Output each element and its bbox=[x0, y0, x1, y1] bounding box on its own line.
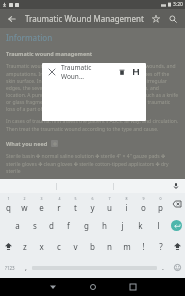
staticText: m bbox=[123, 241, 131, 252]
staticText: v bbox=[73, 241, 78, 252]
staticText: 5 bbox=[74, 196, 77, 201]
button[interactable]: . bbox=[157, 257, 169, 278]
staticText: i bbox=[125, 202, 128, 213]
button[interactable]: 0 bbox=[152, 193, 169, 215]
button[interactable]: ! bbox=[135, 236, 152, 257]
button[interactable]: Expand bbox=[51, 140, 58, 147]
button[interactable]: 8 bbox=[118, 193, 135, 215]
staticText: p bbox=[158, 202, 163, 213]
staticText: Traumatic Woun... bbox=[61, 63, 116, 81]
staticText: What you need bbox=[6, 140, 48, 147]
staticText: t bbox=[74, 202, 77, 213]
staticText: c bbox=[57, 241, 61, 252]
button[interactable]: Space bbox=[32, 262, 157, 273]
button[interactable]: l bbox=[149, 215, 167, 236]
staticText: 2 bbox=[23, 196, 26, 201]
button[interactable]: Save bbox=[130, 66, 142, 78]
button[interactable]: Close bbox=[46, 66, 58, 78]
staticText: s bbox=[33, 220, 37, 231]
button[interactable]: v bbox=[67, 236, 84, 257]
staticText: In cases of trauma, first assess the pat… bbox=[6, 118, 179, 132]
staticText: l bbox=[157, 220, 160, 231]
button[interactable]: Voice input bbox=[170, 180, 182, 192]
button[interactable]: 7 bbox=[101, 193, 118, 215]
staticText: f bbox=[67, 220, 70, 231]
button[interactable]: Emoji bbox=[169, 257, 185, 278]
button[interactable]: ?123 bbox=[0, 257, 20, 278]
staticText: a bbox=[15, 220, 20, 231]
staticText: o bbox=[141, 202, 146, 213]
button[interactable]: Shift bbox=[169, 236, 185, 257]
staticText: Traumatic Wound Management bbox=[25, 13, 149, 24]
staticText: ! bbox=[142, 241, 145, 252]
button[interactable]: j bbox=[113, 215, 131, 236]
staticText: 7 bbox=[108, 196, 111, 201]
staticText: b bbox=[90, 241, 95, 252]
button[interactable]: k bbox=[131, 215, 149, 236]
staticText: 4 bbox=[58, 196, 61, 201]
staticText: Information bbox=[6, 32, 53, 43]
staticText: , bbox=[25, 263, 27, 273]
button[interactable]: 1 bbox=[0, 193, 16, 215]
staticText: j bbox=[121, 220, 124, 231]
staticText: Sterile basin ✤ normal saline solution ✤… bbox=[6, 153, 179, 174]
staticText: h bbox=[102, 220, 107, 231]
staticText: . bbox=[162, 263, 164, 273]
staticText: 1 bbox=[7, 196, 10, 201]
staticText: 8 bbox=[125, 196, 128, 201]
button[interactable]: 2 bbox=[16, 193, 33, 215]
button[interactable]: ? bbox=[152, 236, 169, 257]
button[interactable]: b bbox=[84, 236, 101, 257]
button[interactable]: Enter bbox=[167, 215, 185, 236]
button[interactable]: m bbox=[118, 236, 135, 257]
button[interactable]: a bbox=[9, 215, 26, 236]
staticText: u bbox=[107, 202, 112, 213]
staticText: e bbox=[39, 202, 44, 213]
button[interactable]: f bbox=[60, 215, 77, 236]
button[interactable]: g bbox=[77, 215, 95, 236]
button[interactable]: , bbox=[20, 257, 32, 278]
button[interactable]: 3 bbox=[33, 193, 50, 215]
button[interactable]: d bbox=[43, 215, 60, 236]
button[interactable]: h bbox=[95, 215, 113, 236]
button[interactable]: Home bbox=[80, 278, 106, 296]
button[interactable]: z bbox=[16, 236, 33, 257]
button[interactable]: 9 bbox=[135, 193, 152, 215]
button[interactable]: Shift bbox=[0, 236, 16, 257]
staticText: n bbox=[107, 241, 112, 252]
staticText: 0 bbox=[159, 196, 162, 201]
button[interactable]: 4 bbox=[50, 193, 67, 215]
button[interactable]: Back bbox=[40, 278, 66, 296]
button[interactable]: 6 bbox=[84, 193, 101, 215]
button[interactable]: c bbox=[50, 236, 67, 257]
button[interactable]: Bookmark bbox=[149, 12, 163, 26]
staticText: x bbox=[39, 241, 44, 252]
staticText: k bbox=[138, 220, 143, 231]
button[interactable]: Backspace bbox=[169, 193, 185, 215]
staticText: z bbox=[23, 241, 27, 252]
staticText: 3:20 bbox=[173, 1, 183, 8]
staticText: d bbox=[49, 220, 54, 231]
staticText: r bbox=[57, 202, 61, 213]
staticText: w bbox=[21, 202, 28, 213]
button[interactable]: Recents bbox=[120, 278, 146, 296]
button[interactable]: n bbox=[101, 236, 118, 257]
button[interactable]: 5 bbox=[67, 193, 84, 215]
staticText: Traumatic wounds include abrasions, lace… bbox=[6, 63, 179, 112]
staticText: g bbox=[84, 220, 89, 231]
button[interactable]: x bbox=[33, 236, 50, 257]
staticText: y bbox=[90, 202, 95, 213]
button[interactable]: Back bbox=[5, 12, 19, 26]
button[interactable]: Search bbox=[166, 12, 180, 26]
staticText: ? bbox=[159, 241, 163, 252]
staticText: 3 bbox=[40, 196, 43, 201]
button[interactable]: s bbox=[26, 215, 43, 236]
staticText: 6 bbox=[91, 196, 94, 201]
staticText: 9 bbox=[142, 196, 145, 201]
staticText: Traumatic wound management bbox=[6, 50, 93, 57]
staticText: q bbox=[6, 202, 11, 213]
button[interactable]: Delete bbox=[116, 66, 128, 78]
staticText: ?123 bbox=[5, 265, 15, 271]
